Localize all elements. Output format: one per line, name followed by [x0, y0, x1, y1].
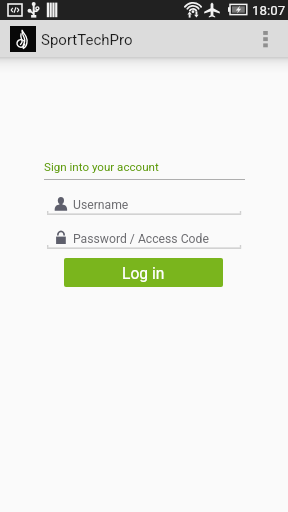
button[interactable]: Password / Access Code	[44, 226, 245, 250]
staticText: 18:07	[252, 3, 286, 19]
staticText: Password / Access Code	[73, 232, 209, 246]
button[interactable]: Username	[44, 192, 245, 216]
staticText: Sign into your account	[44, 160, 159, 174]
staticText: Log in	[122, 265, 165, 283]
button[interactable]: Log in	[64, 258, 223, 287]
button[interactable]: More options	[247, 20, 284, 57]
staticText: Username	[73, 198, 129, 212]
staticText: SportTechPro	[41, 31, 133, 49]
